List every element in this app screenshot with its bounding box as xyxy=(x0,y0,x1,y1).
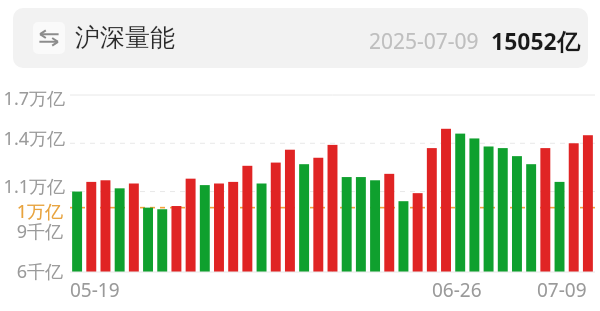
staticText: 1.7万亿 xyxy=(3,86,65,111)
staticText: 05-19 xyxy=(70,277,120,303)
staticText: 1万亿 xyxy=(16,199,63,224)
staticText: 沪深量能 xyxy=(75,22,175,53)
staticText: 6千亿 xyxy=(16,259,63,284)
staticText: 07-09 xyxy=(537,277,587,303)
staticText: 2025-07-09 xyxy=(369,27,479,56)
staticText: 1.4万亿 xyxy=(3,126,65,151)
staticText: 15052亿 xyxy=(491,25,580,56)
button[interactable]: Switch indicator xyxy=(13,8,588,68)
staticText: 06-26 xyxy=(432,277,482,303)
button[interactable]: Switch indicator xyxy=(33,22,65,54)
staticText: 9千亿 xyxy=(16,219,63,244)
staticText: 1.1万亿 xyxy=(3,174,65,199)
button[interactable] xyxy=(70,90,595,272)
